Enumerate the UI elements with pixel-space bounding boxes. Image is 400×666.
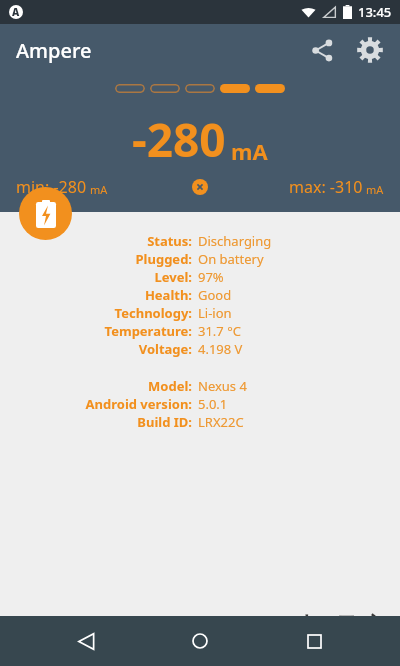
staticText: LRX22C bbox=[198, 413, 244, 431]
button[interactable]: Share bbox=[298, 26, 346, 74]
button[interactable]: Reset min and max bbox=[187, 174, 213, 200]
staticText: Status: bbox=[147, 232, 192, 250]
button[interactable]: Build ID: bbox=[0, 413, 400, 431]
staticText: 大玩客 bbox=[290, 609, 392, 652]
staticText: Plugged: bbox=[135, 250, 192, 268]
staticText: 5.0.1 bbox=[198, 395, 228, 413]
staticText: Android version: bbox=[85, 395, 192, 413]
staticText: Discharging bbox=[198, 232, 272, 250]
button[interactable]: Battery bbox=[19, 187, 72, 240]
staticText: Health: bbox=[144, 286, 192, 304]
staticText: Model: bbox=[148, 377, 192, 395]
staticText: -280 bbox=[132, 108, 226, 171]
button[interactable]: Level: bbox=[0, 268, 400, 286]
button[interactable]: Status: bbox=[0, 232, 400, 250]
staticText: 31.7 °C bbox=[198, 322, 241, 340]
button[interactable]: min: -280 bbox=[16, 176, 108, 198]
staticText: Technology: bbox=[114, 304, 192, 322]
staticText: On battery bbox=[198, 250, 264, 268]
staticText: 97% bbox=[198, 268, 224, 286]
button[interactable]: max: -310 bbox=[289, 176, 384, 198]
button[interactable]: Back bbox=[58, 616, 114, 666]
staticText: min: -280 bbox=[16, 176, 87, 198]
button[interactable]: Technology: bbox=[0, 304, 400, 322]
staticText: mA bbox=[366, 182, 384, 197]
button[interactable]: Android version: bbox=[0, 395, 400, 413]
staticText: A bbox=[12, 5, 20, 19]
button[interactable]: Temperature: bbox=[0, 322, 400, 340]
button[interactable]: Home bbox=[172, 616, 228, 666]
staticText: Level: bbox=[154, 268, 192, 286]
staticText: Nexus 4 bbox=[198, 377, 247, 395]
button[interactable]: Model: bbox=[0, 377, 400, 395]
staticText: mA bbox=[231, 136, 268, 166]
staticText: Good bbox=[198, 286, 232, 304]
button[interactable]: Voltage: bbox=[0, 340, 400, 358]
staticText: 13:45 bbox=[358, 3, 392, 21]
staticText: max: -310 bbox=[289, 176, 363, 198]
staticText: Voltage: bbox=[138, 340, 192, 358]
button[interactable]: Recent apps bbox=[286, 616, 342, 666]
staticText: Li-ion bbox=[198, 304, 232, 322]
staticText: 4.198 V bbox=[198, 340, 243, 358]
button[interactable]: Health: bbox=[0, 286, 400, 304]
staticText: Build ID: bbox=[137, 413, 192, 431]
button[interactable]: Plugged: bbox=[0, 250, 400, 268]
staticText: Temperature: bbox=[104, 322, 192, 340]
staticText: mA bbox=[90, 182, 108, 197]
staticText: Ampere bbox=[16, 37, 92, 64]
button[interactable]: Settings bbox=[346, 26, 394, 74]
